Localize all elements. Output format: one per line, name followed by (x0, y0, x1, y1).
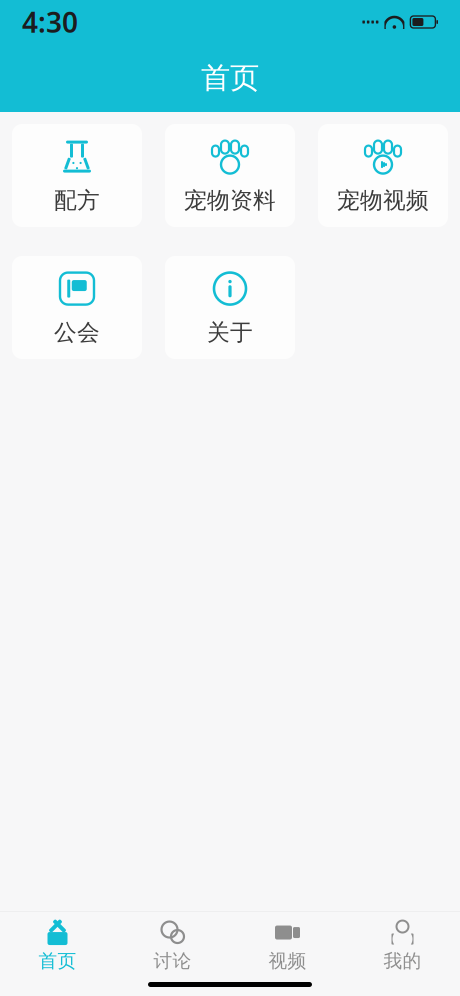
button[interactable]: 首页 (0, 918, 115, 974)
button[interactable]: 配方 (12, 124, 142, 227)
button[interactable]: 宠物视频 (318, 124, 448, 227)
staticText: 视频 (268, 949, 306, 972)
staticText: 宠物视频 (337, 187, 429, 214)
staticText: 首页 (38, 949, 76, 972)
staticText: 讨论 (153, 949, 191, 972)
staticText: 配方 (54, 187, 100, 214)
button[interactable]: 视频 (230, 918, 345, 974)
staticText: 4:30 (22, 3, 78, 41)
staticText: 首页 (201, 60, 259, 96)
staticText: 我的 (383, 949, 421, 972)
staticText: 宠物资料 (184, 187, 276, 214)
button[interactable]: 宠物资料 (165, 124, 295, 227)
staticText: 公会 (54, 319, 100, 346)
staticText: 关于 (207, 319, 253, 346)
button[interactable]: 我的 (345, 918, 460, 974)
button[interactable]: 公会 (12, 256, 142, 359)
button[interactable]: 讨论 (115, 918, 230, 974)
button[interactable]: 关于 (165, 256, 295, 359)
